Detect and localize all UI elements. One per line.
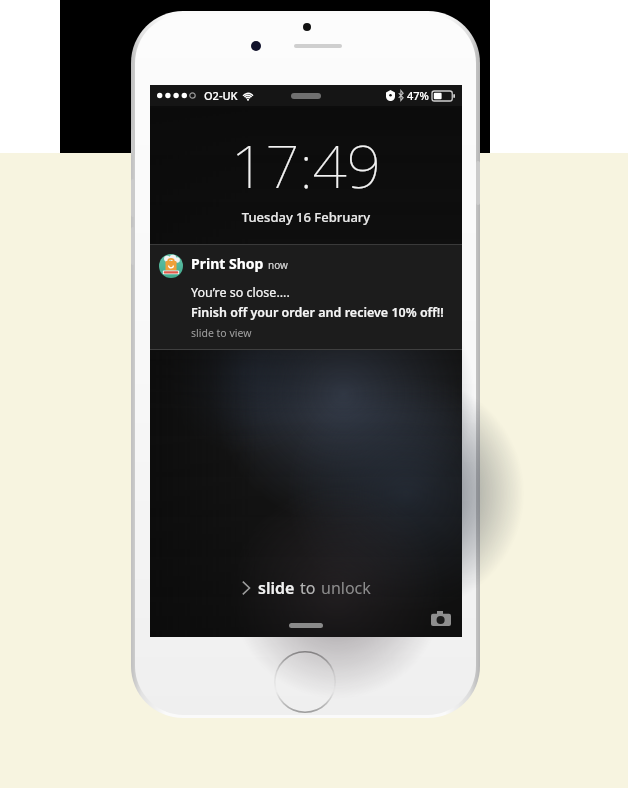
staticText: slide to view [191, 326, 252, 340]
staticText: 47% [407, 88, 429, 103]
staticText: O2-UK [204, 88, 238, 103]
staticText: You’re so close.... [191, 284, 290, 301]
button[interactable]: Print Shop [150, 244, 462, 350]
button[interactable]: Home [274, 651, 336, 713]
staticText: now [268, 258, 288, 272]
button[interactable]: Camera [428, 605, 454, 631]
staticText: unlock [321, 577, 371, 599]
staticText: 17:49 [150, 124, 462, 206]
staticText: Tuesday 16 February [150, 208, 462, 226]
staticText: Finish off your order and recieve 10% of… [191, 304, 444, 321]
staticText: Print Shop [191, 254, 264, 273]
staticText: to [300, 577, 316, 599]
staticText: slide [258, 577, 295, 599]
button[interactable]: slide [241, 577, 371, 599]
